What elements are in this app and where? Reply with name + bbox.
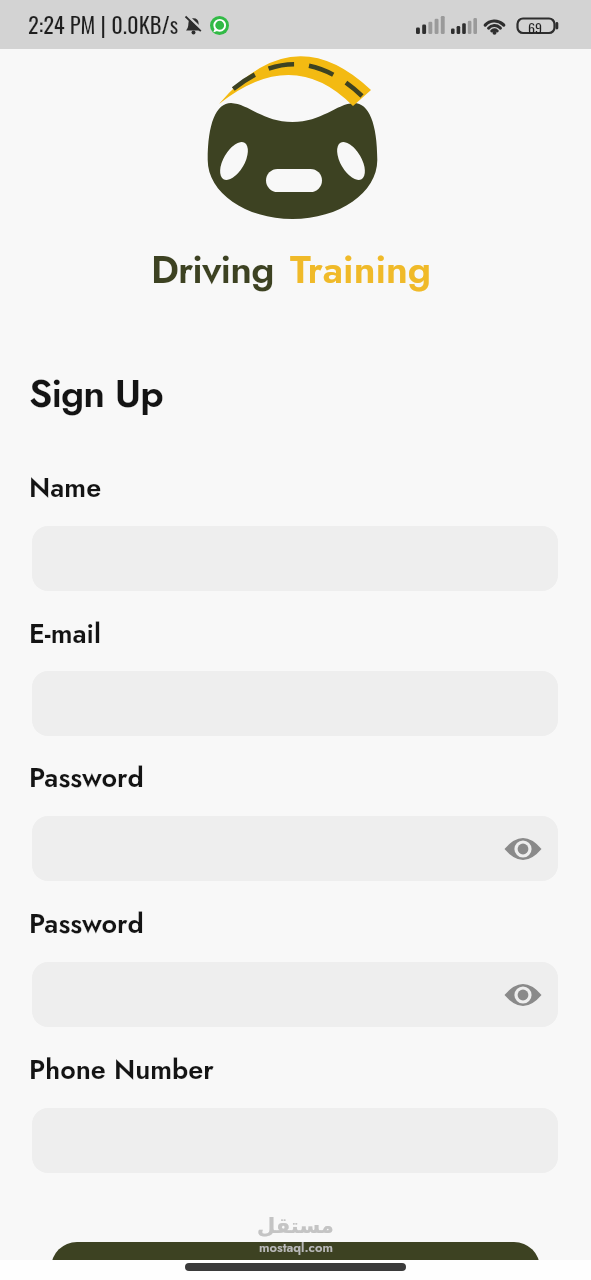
- button[interactable]: [51, 1242, 540, 1280]
- staticText: mostaql.com: [259, 1238, 333, 1257]
- staticText: Phone Number: [29, 1050, 214, 1089]
- staticText: Password: [29, 758, 144, 797]
- staticText: E-mail: [29, 614, 101, 653]
- staticText: مستقل: [257, 1214, 334, 1238]
- staticText: 69: [528, 17, 542, 38]
- button[interactable]: [32, 816, 558, 881]
- staticText: Driving: [151, 241, 274, 297]
- staticText: Sign Up: [29, 365, 163, 421]
- staticText: 2:24 PM | 0.0KB/s: [28, 7, 179, 40]
- staticText: Training: [290, 241, 432, 297]
- staticText: Name: [29, 468, 102, 507]
- staticText: Password: [29, 904, 144, 943]
- button[interactable]: [32, 962, 558, 1027]
